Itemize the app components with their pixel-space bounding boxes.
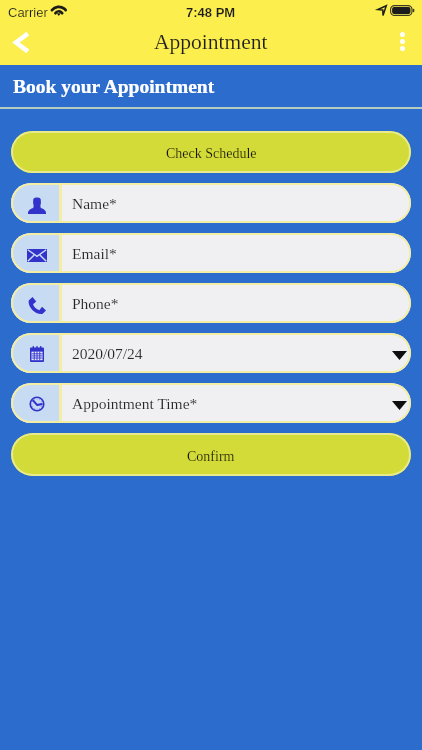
staticText: Appointment xyxy=(154,30,268,54)
staticText: 7:48 PM xyxy=(186,5,236,20)
button[interactable]: Confirm xyxy=(11,433,411,476)
button[interactable]: Back xyxy=(0,25,42,65)
staticText: Appointment Time* xyxy=(72,395,392,412)
button[interactable]: More options xyxy=(382,25,422,65)
button[interactable]: Appointment Time* xyxy=(11,383,411,423)
button[interactable]: Email* xyxy=(11,233,411,273)
staticText: Carrier xyxy=(8,5,48,20)
staticText: 2020/07/24 xyxy=(72,345,392,362)
staticText: Name* xyxy=(72,195,411,212)
staticText: Confirm xyxy=(187,449,235,465)
staticText: Check Schedule xyxy=(166,146,257,162)
staticText: Email* xyxy=(72,245,411,262)
button[interactable]: Name* xyxy=(11,183,411,223)
button[interactable]: Check Schedule xyxy=(11,131,411,173)
staticText: Phone* xyxy=(72,295,411,312)
staticText: Book your Appointment xyxy=(13,76,215,98)
button[interactable]: Phone* xyxy=(11,283,411,323)
button[interactable]: 2020/07/24 xyxy=(11,333,411,373)
